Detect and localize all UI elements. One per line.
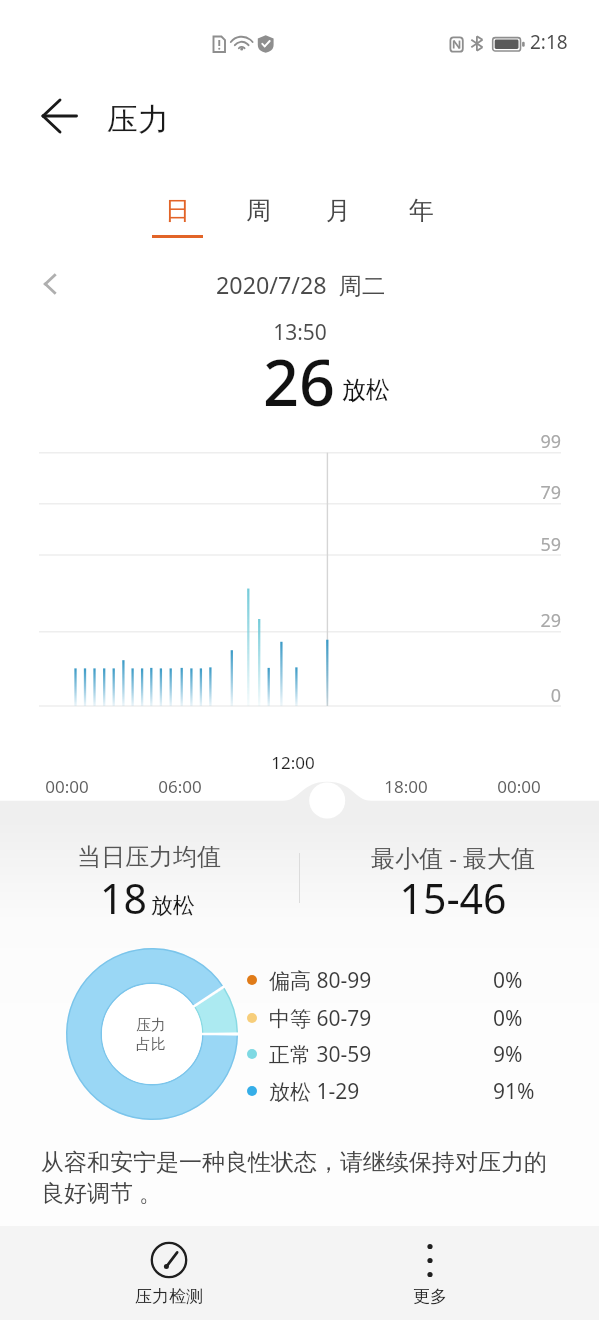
staticText: 压力 xyxy=(107,100,169,139)
staticText: 当日压力均值 xyxy=(0,842,349,872)
staticText: 放松 xyxy=(342,375,390,405)
button[interactable]: 更多 xyxy=(325,1224,535,1320)
staticText: 压力检测 xyxy=(135,1286,203,1307)
staticText: 26 xyxy=(263,339,336,425)
staticText: 18 xyxy=(100,870,147,926)
staticText: 79 xyxy=(461,480,561,505)
button[interactable]: 2020/7/28 周二 xyxy=(201,262,401,308)
button[interactable]: 正常 30-59 xyxy=(247,1036,547,1072)
staticText: 15-46 xyxy=(253,870,599,926)
staticText: 91% xyxy=(493,1077,535,1106)
staticText: 2020/7/28 周二 xyxy=(216,269,386,301)
staticText: 日 xyxy=(165,195,190,226)
staticText: 13:50 xyxy=(100,318,500,347)
button[interactable]: 放松 1-29 xyxy=(247,1073,547,1109)
button[interactable]: 中等 60-79 xyxy=(247,1000,547,1036)
staticText: 9% xyxy=(493,1040,523,1069)
button[interactable]: 周 xyxy=(218,192,298,248)
staticText: 2:18 xyxy=(530,29,568,55)
staticText: 偏高 80-99 xyxy=(269,966,372,995)
button[interactable]: 日 xyxy=(137,192,217,248)
staticText: 中等 60-79 xyxy=(269,1004,372,1033)
button[interactable]: 偏高 80-99 xyxy=(247,962,547,998)
staticText: 29 xyxy=(461,608,561,633)
button[interactable]: 年 xyxy=(381,192,461,248)
staticText: 正常 30-59 xyxy=(269,1040,372,1069)
staticText: 99 xyxy=(461,429,561,454)
staticText: 0% xyxy=(493,966,523,995)
staticText: 放松 xyxy=(151,892,195,920)
button[interactable]: Previous day xyxy=(28,262,72,306)
staticText: 06:00 xyxy=(0,775,380,798)
staticText: 00:00 xyxy=(0,775,267,798)
staticText: 18:00 xyxy=(206,775,599,798)
staticText: 更多 xyxy=(413,1286,447,1307)
button[interactable]: Back xyxy=(31,88,87,144)
staticText: 0% xyxy=(493,1004,523,1033)
staticText: 0 xyxy=(461,683,561,708)
staticText: 压力 占比 xyxy=(101,1016,201,1053)
staticText: 放松 1-29 xyxy=(269,1077,360,1106)
staticText: 周 xyxy=(246,195,271,226)
staticText: 12:00 xyxy=(93,751,493,774)
staticText: 00:00 xyxy=(319,775,599,798)
staticText: 从容和安宁是一种良性状态，请继续保持对压力的良好调节 。 xyxy=(41,1148,561,1208)
button[interactable]: 压力检测 xyxy=(64,1224,274,1320)
staticText: 年 xyxy=(409,195,434,226)
staticText: 最小值 - 最大值 xyxy=(253,841,599,874)
button[interactable]: 月 xyxy=(298,192,378,248)
staticText: 月 xyxy=(326,195,351,226)
staticText: 59 xyxy=(461,532,561,557)
button[interactable]: 压力 xyxy=(100,88,162,136)
